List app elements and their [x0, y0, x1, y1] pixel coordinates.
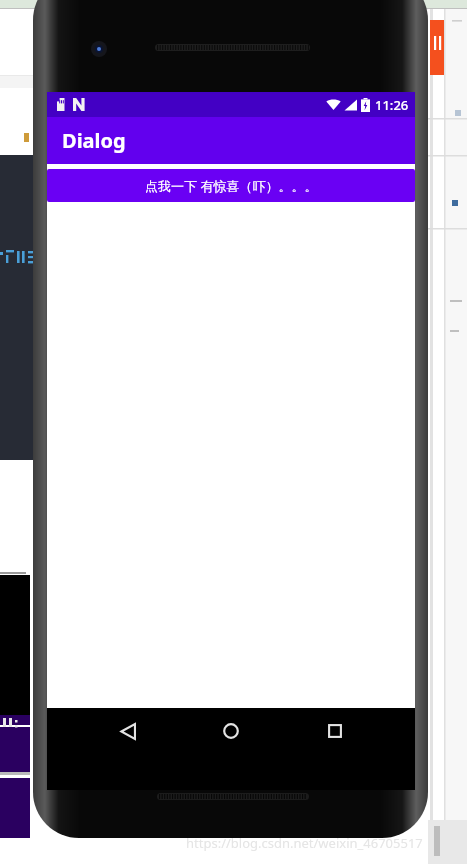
button[interactable]: Back — [105, 708, 151, 754]
staticText: https://blog.csdn.net/weixin_46705517 — [186, 834, 423, 852]
button[interactable]: 点我一下 有惊喜（吓）。。。 — [47, 169, 415, 202]
staticText: 11:26 — [375, 96, 409, 114]
staticText: Dialog — [62, 127, 126, 154]
button[interactable]: Recent apps — [312, 708, 358, 754]
button[interactable]: Home — [208, 708, 254, 754]
staticText: 点我一下 有惊喜（吓）。。。 — [145, 177, 318, 195]
